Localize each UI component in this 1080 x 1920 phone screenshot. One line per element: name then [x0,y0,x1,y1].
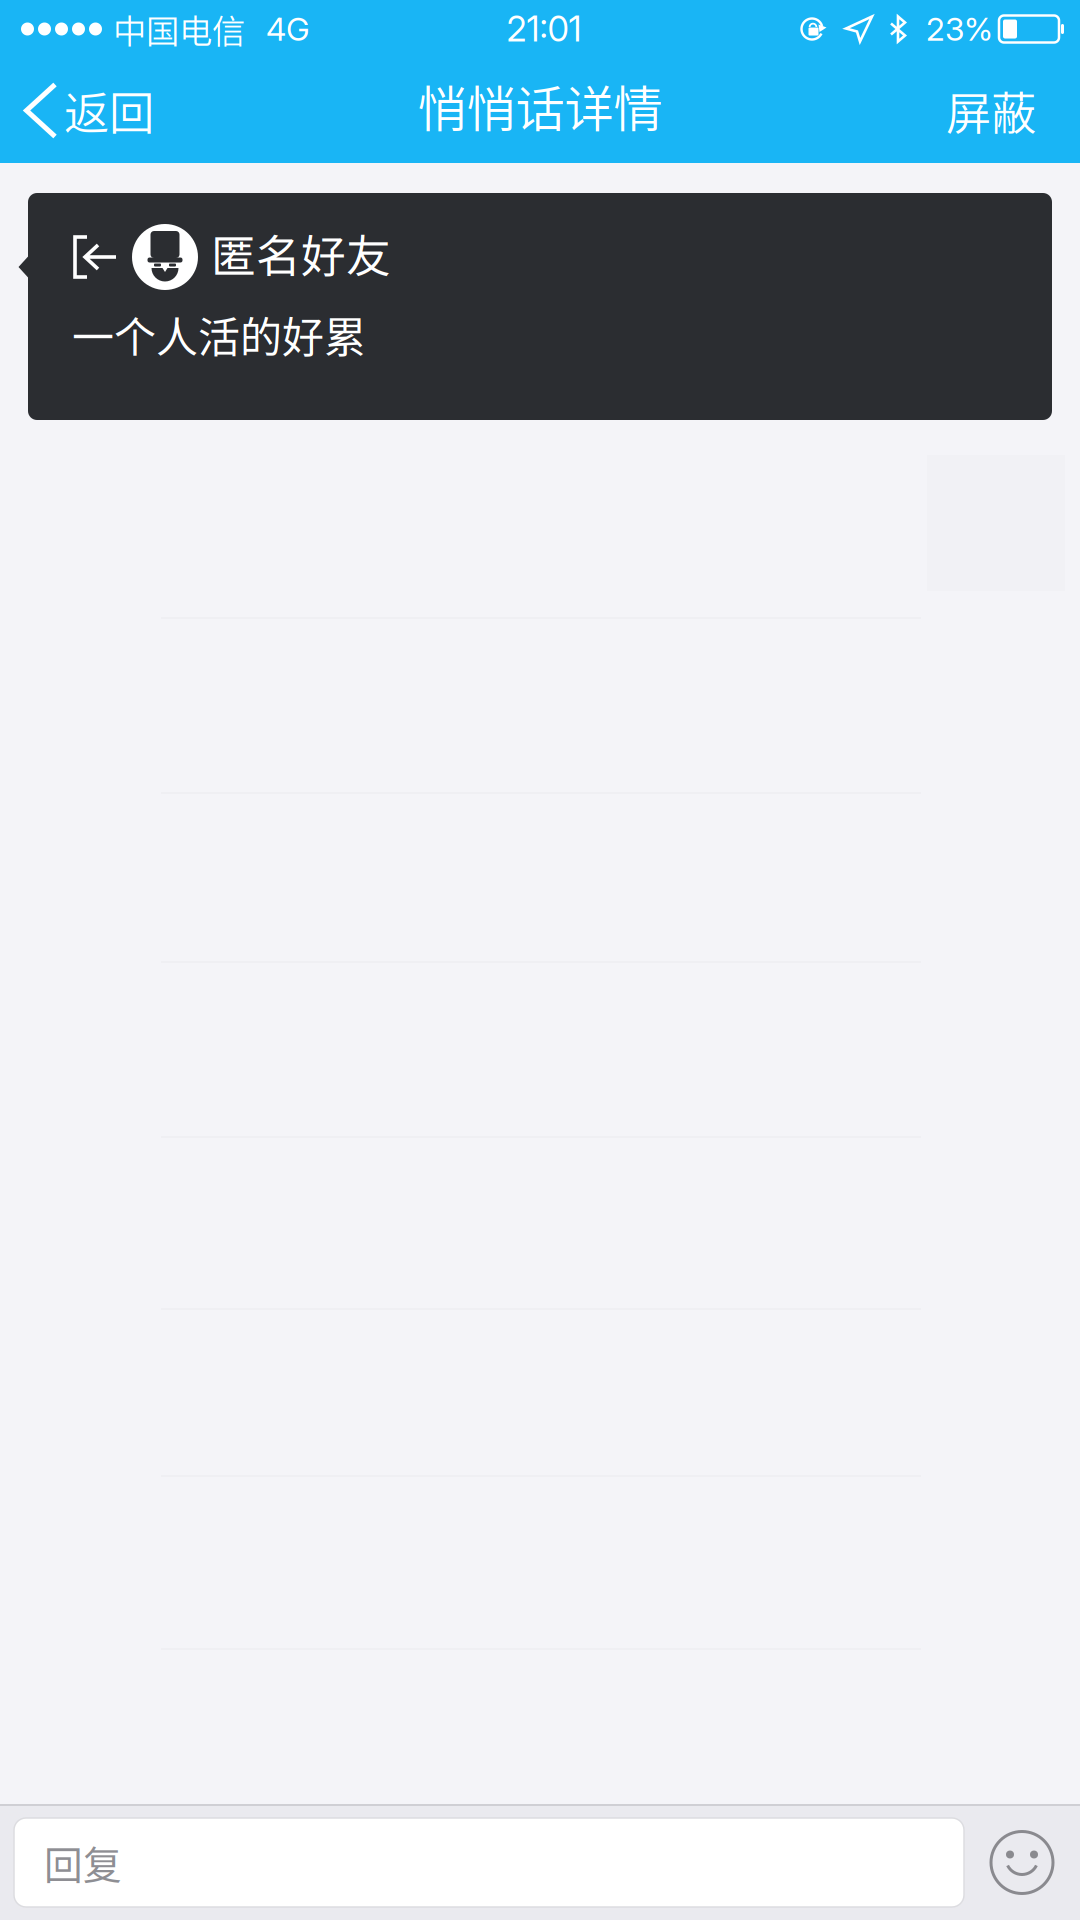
staticText: 中国电信 [113,5,245,53]
staticText: 23% [926,10,993,48]
staticText: 屏蔽 [946,78,1036,143]
staticText: 回复 [44,1834,122,1890]
button[interactable]: 返回 [0,58,176,162]
button[interactable]: 回复 [14,1818,964,1907]
button[interactable]: Emoji [990,1818,1054,1907]
staticText: 21:01 [506,8,581,50]
staticText: 返回 [64,78,154,143]
button[interactable]: 匿名好友 [28,193,1052,420]
staticText: 匿名好友 [211,221,391,285]
staticText: 一个人活的好累 [72,304,366,365]
staticText: 悄悄话详情 [417,70,662,141]
button[interactable]: 屏蔽 [918,58,1080,162]
staticText: 4G [266,10,310,48]
